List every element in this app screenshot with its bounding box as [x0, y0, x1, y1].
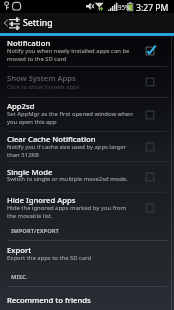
button[interactable]	[0, 287, 174, 310]
staticText: Notify you if cache size used by apps la…	[7, 143, 135, 159]
button[interactable]	[0, 162, 174, 192]
staticText: Notification	[7, 38, 51, 48]
button[interactable]	[0, 132, 174, 161]
staticText: 3:27 PM	[136, 2, 169, 14]
staticText: Recommend to friends	[7, 295, 91, 305]
staticText: Setting	[23, 17, 53, 29]
staticText: Hide the ignored apps marked by you from…	[7, 204, 135, 220]
button[interactable]: Navigate up	[0, 13, 174, 33]
button[interactable]	[0, 36, 174, 66]
button[interactable]	[0, 193, 174, 222]
staticText: MISC.	[11, 273, 28, 281]
staticText: Single Mode	[7, 167, 53, 177]
staticText: Click to show System apps	[7, 83, 80, 91]
staticText: Clear Cache Notification	[7, 134, 96, 144]
button[interactable]	[0, 67, 174, 97]
staticText: Notify you when newly installed apps can…	[7, 47, 135, 63]
staticText: Hide Ignored Apps	[7, 195, 76, 205]
staticText: Switch to single or multiple move2sd mod…	[7, 175, 128, 183]
staticText: Set AppMgr as the first opened window wh…	[7, 110, 135, 126]
staticText: App2sd	[7, 101, 35, 111]
staticText: Show System Apps	[7, 73, 76, 83]
button[interactable]	[0, 241, 174, 267]
staticText: Export the apps to the SD card	[7, 254, 92, 262]
staticText: IMPORT/EXPORT	[11, 227, 59, 235]
button[interactable]	[0, 98, 174, 131]
staticText: Export	[7, 245, 32, 255]
staticText: 95%	[118, 3, 131, 11]
